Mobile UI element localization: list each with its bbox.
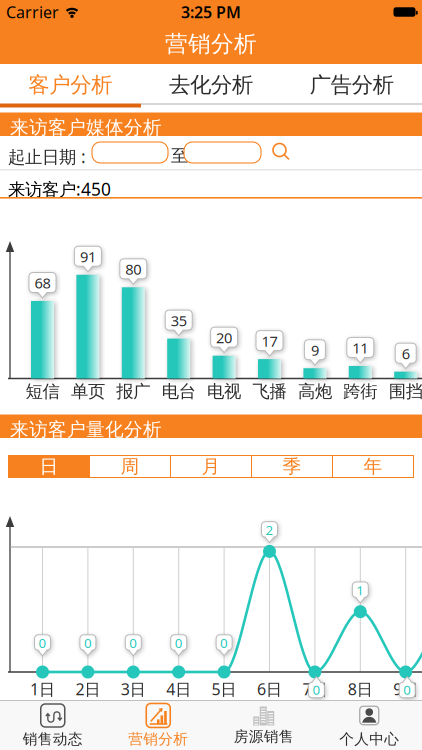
button[interactable]: 截止日期 <box>184 142 261 163</box>
staticText: 7日 <box>302 678 327 700</box>
staticText: 5日 <box>212 678 237 700</box>
staticText: 0 <box>129 634 137 652</box>
staticText: 11 <box>352 338 368 358</box>
staticText: 0 <box>220 634 228 652</box>
staticText: 来访客户媒体分析 <box>10 116 162 139</box>
staticText: 营销分析 <box>128 730 188 748</box>
staticText: 来访客户量化分析 <box>10 418 162 441</box>
staticText: 91 <box>80 247 96 266</box>
staticText: 日 <box>39 455 58 478</box>
staticText: 80 <box>125 259 141 279</box>
button[interactable]: 房源销售 <box>211 701 316 750</box>
button[interactable]: 客户分析 <box>0 65 141 105</box>
staticText: 至 <box>171 145 188 166</box>
staticText: 9日 <box>393 678 418 700</box>
staticText: 0 <box>312 681 320 698</box>
staticText: 电视 <box>207 381 241 402</box>
staticText: 20 <box>216 328 232 347</box>
staticText: 2 <box>265 521 273 539</box>
staticText: 6日 <box>257 678 282 700</box>
button[interactable]: 销售动态 <box>0 701 105 750</box>
staticText: 房源销售 <box>234 727 294 745</box>
staticText: 月 <box>201 455 220 478</box>
staticText: 广告分析 <box>310 72 394 98</box>
staticText: 17 <box>261 331 277 351</box>
staticText: 35 <box>171 311 187 330</box>
staticText: 3:25 PM <box>181 1 241 23</box>
staticText: 单页 <box>71 381 105 402</box>
button[interactable]: 广告分析 <box>281 65 422 105</box>
staticText: 销售动态 <box>23 730 83 748</box>
staticText: 去化分析 <box>169 72 253 98</box>
button[interactable]: 去化分析 <box>141 65 281 105</box>
staticText: 报广 <box>116 381 150 402</box>
button[interactable]: 起始日期 <box>92 142 168 163</box>
staticText: 4日 <box>166 678 191 700</box>
staticText: 营销分析 <box>165 30 257 58</box>
staticText: Carrier <box>6 1 59 23</box>
staticText: 短信 <box>25 381 59 402</box>
staticText: 0 <box>403 681 411 698</box>
staticText: 0 <box>84 634 92 652</box>
staticText: 6 <box>402 344 410 363</box>
staticText: 68 <box>34 273 50 293</box>
staticText: 电台 <box>162 381 196 402</box>
staticText: 起止日期 : <box>8 145 86 168</box>
button[interactable]: 季 <box>252 456 332 477</box>
button[interactable]: 营销分析 <box>105 701 211 750</box>
staticText: 1 <box>356 581 364 599</box>
staticText: 9 <box>311 340 319 360</box>
staticText: 0 <box>38 634 46 652</box>
staticText: 2日 <box>75 678 100 700</box>
button[interactable]: 个人中心 <box>316 701 422 750</box>
staticText: 年 <box>363 455 382 478</box>
staticText: 8日 <box>348 678 373 700</box>
button[interactable]: 搜索 <box>271 142 291 162</box>
staticText: 围挡 <box>389 381 422 402</box>
staticText: 1日 <box>30 678 55 700</box>
button[interactable]: 年 <box>333 456 413 477</box>
staticText: 高炮 <box>298 381 332 402</box>
button[interactable]: 月 <box>171 456 251 477</box>
staticText: 0 <box>175 634 183 652</box>
staticText: 3日 <box>121 678 146 700</box>
button[interactable]: 日 <box>9 456 89 477</box>
staticText: 飞播 <box>252 381 286 402</box>
staticText: 客户分析 <box>28 72 112 98</box>
staticText: 周 <box>120 455 139 478</box>
staticText: 个人中心 <box>339 730 399 748</box>
button[interactable]: 周 <box>90 456 170 477</box>
staticText: 来访客户:450 <box>8 177 111 200</box>
staticText: 季 <box>282 455 301 478</box>
staticText: 跨街 <box>343 381 377 402</box>
